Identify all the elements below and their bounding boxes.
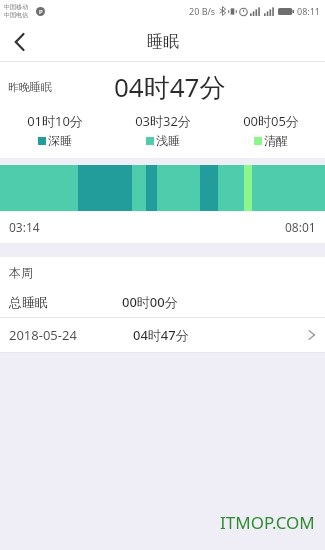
staticText: 03:14 [9,219,40,235]
staticText: 2018-05-24 [9,326,77,344]
staticText: 01时10分 [27,112,83,130]
staticText: 03时32分 [135,112,191,130]
staticText: 清醒 [264,133,288,148]
staticText: 中国移动 [4,3,28,11]
staticText: 深睡 [48,133,72,148]
button[interactable]: 返回 [0,22,40,62]
staticText: 中国电信 [4,11,28,19]
staticText: 睡眠 [147,32,179,52]
staticText: 00时05分 [243,112,299,130]
staticText: P [39,8,43,16]
staticText: 昨晚睡眠 [8,80,52,94]
staticText: 08:11 [297,5,321,17]
staticText: 00时00分 [122,293,178,311]
staticText: 本周 [9,265,33,280]
button[interactable]: 2018-05-24 [0,318,325,352]
staticText: 04时47分 [114,69,226,105]
staticText: 04时47分 [133,326,189,344]
staticText: 浅睡 [156,133,180,148]
staticText: 08:01 [285,219,316,235]
staticText: ITMOP.COM [220,511,315,534]
staticText: 20 B/s [189,5,216,17]
staticText: 总睡眠 [9,294,48,310]
button[interactable]: 总睡眠 [0,287,325,317]
